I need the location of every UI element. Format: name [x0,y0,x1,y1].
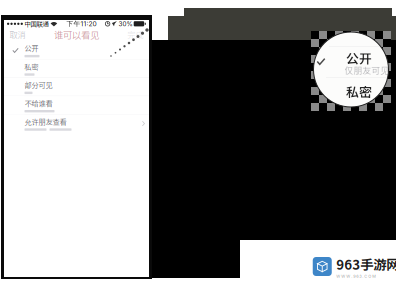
button[interactable]: 公开 [4,41,149,59]
staticText: 公开 [346,49,372,67]
staticText: 完成 [127,28,143,40]
button[interactable]: 不给谁看 [4,96,149,114]
staticText: 谁可以看见 [54,28,99,41]
staticText: 公开 [24,43,38,53]
staticText: 部分可见 [24,80,52,90]
button[interactable]: 私密 [4,59,149,77]
staticText: 取消 [10,28,26,40]
staticText: 私密 [346,82,372,101]
staticText: 30% [118,20,132,28]
button[interactable]: 部分可见 [4,78,149,96]
staticText: 不给谁看 [24,98,52,108]
button[interactable]: 允许朋友查看 [4,115,149,132]
staticText: 中国联通 [24,19,48,28]
staticText: W W W . 9 6 3 . C O M [336,274,376,279]
button[interactable]: 取消 [6,28,30,40]
staticText: 允许朋友查看 [24,116,66,127]
staticText: 963手游网 [336,254,396,273]
staticText: 私密 [24,61,38,72]
button[interactable]: 完成 [123,28,147,40]
staticText: 仅朋友可见 [344,64,389,76]
staticText: 下午11:20 [66,20,96,28]
